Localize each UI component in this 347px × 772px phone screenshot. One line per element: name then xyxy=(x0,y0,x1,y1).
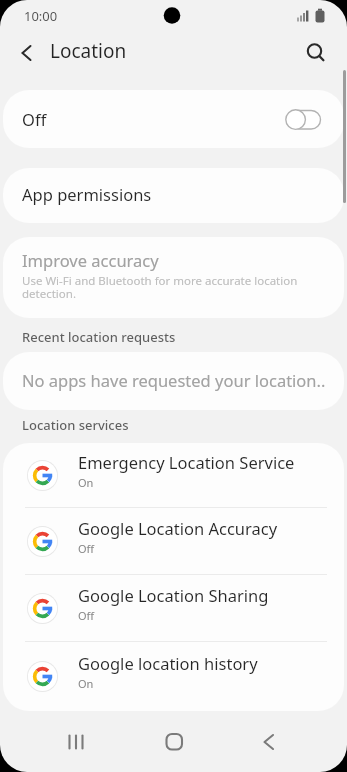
button[interactable] xyxy=(54,720,98,764)
button[interactable] xyxy=(246,720,290,764)
staticText: Google location history xyxy=(78,652,258,674)
button[interactable]: Improve accuracy xyxy=(3,237,344,318)
button[interactable]: Emergency Location Service xyxy=(3,443,344,507)
staticText: Recent location requests xyxy=(22,328,176,346)
staticText: Emergency Location Service xyxy=(78,451,295,473)
button[interactable]: Google Location Sharing xyxy=(3,575,344,641)
staticText: Off xyxy=(22,108,47,130)
staticText: On xyxy=(78,475,94,490)
staticText: Off xyxy=(78,608,95,623)
staticText: Google Location Accuracy xyxy=(78,517,278,539)
button[interactable]: No apps have requested your location.. xyxy=(3,352,344,410)
button[interactable]: Google location history xyxy=(3,642,344,711)
staticText: Use Wi-Fi and Bluetooth for more accurat… xyxy=(22,273,332,301)
staticText: No apps have requested your location.. xyxy=(22,369,326,391)
staticText: Location services xyxy=(22,416,129,434)
staticText: Google Location Sharing xyxy=(78,584,269,606)
button[interactable]: Google Location Accuracy xyxy=(3,508,344,574)
button[interactable]: App permissions xyxy=(3,168,344,223)
staticText: 10:00 xyxy=(24,7,58,25)
staticText: Improve accuracy xyxy=(22,249,159,271)
staticText: On xyxy=(78,676,94,691)
staticText: Off xyxy=(78,541,95,556)
button[interactable] xyxy=(0,30,44,72)
button[interactable] xyxy=(152,720,196,764)
button[interactable] xyxy=(291,30,347,72)
button[interactable]: Off xyxy=(3,90,344,148)
staticText: App permissions xyxy=(22,183,152,205)
staticText: Location xyxy=(50,38,127,64)
